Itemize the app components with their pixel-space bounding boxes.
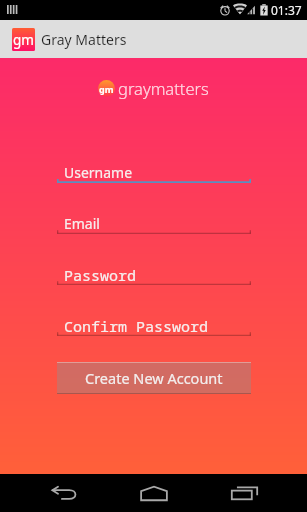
- staticText: gm: [13, 31, 34, 49]
- button[interactable]: Email: [57, 208, 251, 234]
- button[interactable]: Home: [134, 474, 174, 512]
- staticText: Password: [64, 265, 137, 285]
- button[interactable]: Recents: [224, 474, 264, 512]
- staticText: Gray Matters: [41, 30, 127, 49]
- staticText: 01:37: [271, 2, 302, 18]
- staticText: Username: [64, 163, 133, 182]
- button[interactable]: Password: [57, 259, 251, 285]
- button[interactable]: Confirm Password: [57, 310, 251, 336]
- staticText: graymatters: [118, 77, 209, 99]
- staticText: Confirm Password: [64, 316, 209, 336]
- button[interactable]: Username: [57, 157, 251, 183]
- button[interactable]: Create New Account: [57, 362, 251, 394]
- staticText: Create New Account: [85, 368, 223, 388]
- button[interactable]: Back: [44, 474, 84, 512]
- staticText: Email: [64, 214, 100, 233]
- staticText: gm: [99, 83, 114, 95]
